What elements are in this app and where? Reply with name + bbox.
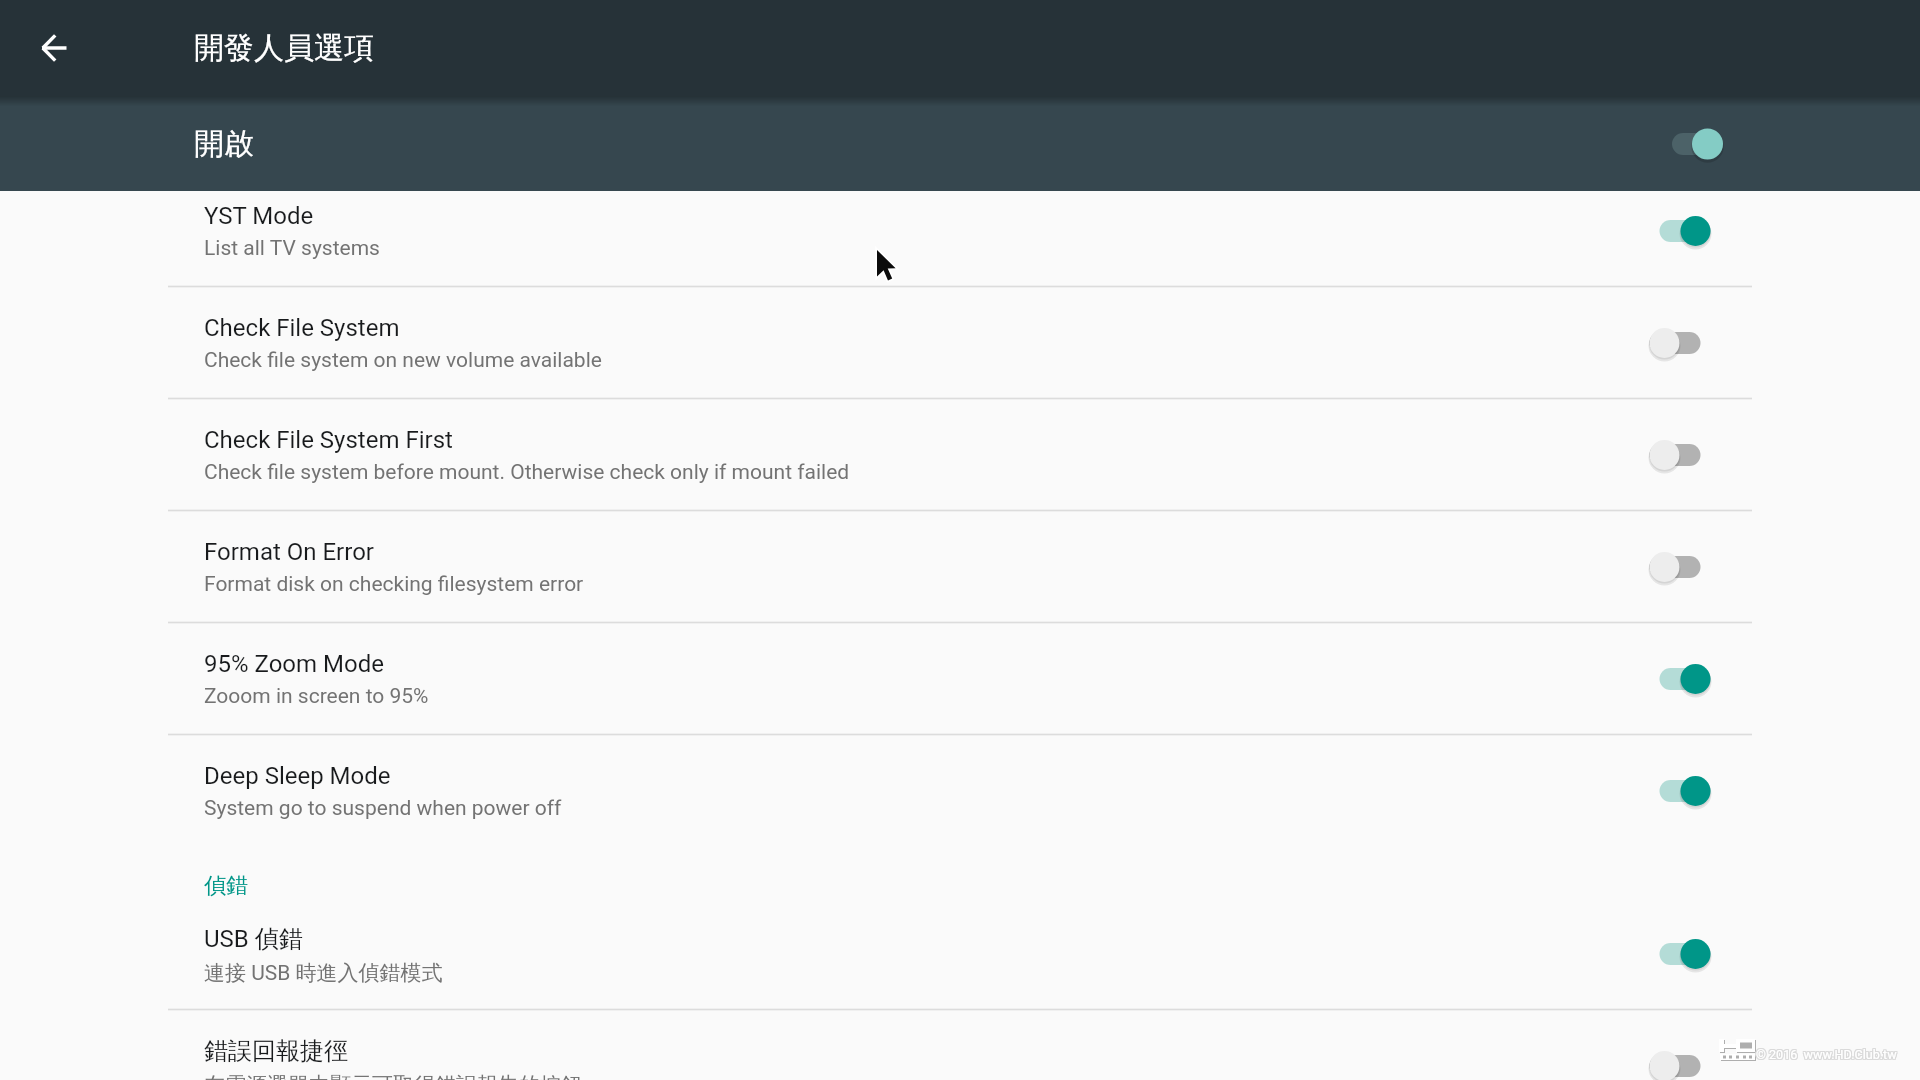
button[interactable]: Toggle developer options <box>1656 116 1738 172</box>
button[interactable]: YST Mode <box>0 175 1920 286</box>
staticText: © 2016 www.HD.Club.tw <box>1755 1048 1896 1063</box>
button[interactable]: YST Mode switch <box>1641 203 1719 259</box>
staticText: © 2016 www.HD.Club.tw <box>1756 1048 1897 1063</box>
button[interactable]: 錯誤回報捷徑 switch <box>1641 1038 1719 1080</box>
button[interactable]: 95% Zoom Mode switch <box>1641 651 1719 707</box>
button[interactable]: Format On Error <box>0 511 1920 622</box>
button[interactable]: Back <box>30 24 78 72</box>
button[interactable]: Deep Sleep Mode <box>0 735 1920 846</box>
staticText: 偵錯 <box>204 872 248 900</box>
staticText: © 2016 www.HD.Club.tw <box>1755 1047 1896 1062</box>
staticText: Format On Error <box>204 538 374 566</box>
staticText: 開啟 <box>194 125 254 163</box>
staticText: Check file system on new volume availabl… <box>204 348 602 373</box>
staticText: Format disk on checking filesystem error <box>204 572 584 597</box>
staticText: 錯誤回報捷徑 <box>204 1036 348 1066</box>
button[interactable]: Check File System <box>0 287 1920 398</box>
staticText: 在電源選單中顯示可取得錯誤報告的按鈕 <box>204 1072 582 1080</box>
staticText: Check File System First <box>204 426 453 454</box>
button[interactable]: Check File System First switch <box>1641 427 1719 483</box>
staticText: Check file system before mount. Otherwis… <box>204 460 850 485</box>
staticText: 開發人員選項 <box>194 29 374 67</box>
staticText: © 2016 www.HD.Club.tw <box>1756 1046 1897 1061</box>
staticText: 連接 USB 時進入偵錯模式 <box>204 960 443 986</box>
button[interactable]: Format On Error switch <box>1641 539 1719 595</box>
button[interactable]: Check File System First <box>0 399 1920 510</box>
staticText: 95% Zoom Mode <box>204 650 384 678</box>
staticText: © 2016 www.HD.Club.tw <box>1757 1046 1898 1061</box>
staticText: List all TV systems <box>204 236 380 261</box>
button[interactable]: 開啟 <box>0 96 1920 191</box>
staticText: Zooom in screen to 95% <box>204 684 429 709</box>
button[interactable]: Deep Sleep Mode switch <box>1641 763 1719 819</box>
button[interactable]: USB 偵錯 <box>0 898 1920 1009</box>
staticText: © 2016 www.HD.Club.tw <box>1757 1047 1898 1062</box>
staticText: USB 偵錯 <box>204 924 303 954</box>
staticText: Deep Sleep Mode <box>204 762 391 790</box>
staticText: System go to suspend when power off <box>204 796 562 821</box>
button[interactable]: 95% Zoom Mode <box>0 623 1920 734</box>
staticText: © 2016 www.HD.Club.tw <box>1757 1048 1898 1063</box>
staticText: © 2016 www.HD.Club.tw <box>1755 1046 1896 1061</box>
button[interactable]: 錯誤回報捷徑 <box>0 1010 1920 1080</box>
staticText: Check File System <box>204 314 400 342</box>
staticText: © 2016 www.HD.Club.tw <box>1756 1047 1897 1062</box>
button[interactable]: USB 偵錯 switch <box>1641 926 1719 982</box>
button[interactable]: Check File System switch <box>1641 315 1719 371</box>
staticText: YST Mode <box>204 202 314 230</box>
